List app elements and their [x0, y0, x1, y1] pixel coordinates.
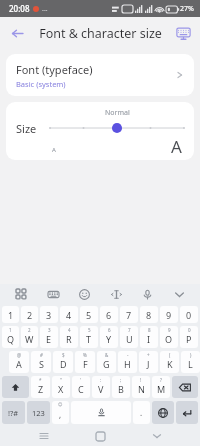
button[interactable]: Hide keyboard — [144, 426, 170, 446]
button[interactable]: 5 — [80, 306, 98, 323]
button[interactable]: ; — [112, 376, 130, 398]
button[interactable]: 9 — [160, 306, 178, 323]
button[interactable]: 8 — [140, 326, 158, 348]
staticText: 2 — [27, 309, 33, 321]
button[interactable]: 4 — [60, 326, 78, 348]
staticText: N — [138, 383, 145, 395]
button[interactable]: : — [92, 376, 110, 398]
button[interactable]: Clipboard — [12, 285, 30, 303]
button[interactable]: 2 — [21, 306, 38, 323]
staticText: L — [188, 358, 193, 370]
button[interactable]: 0 — [180, 326, 198, 348]
staticText: . — [140, 407, 143, 418]
staticText: Z — [38, 383, 44, 395]
staticText: D — [60, 358, 67, 370]
staticText: W — [25, 333, 34, 345]
button[interactable]: Voice input — [138, 285, 156, 303]
button[interactable]: 3 — [40, 326, 58, 348]
staticText: Q — [7, 333, 15, 345]
button[interactable]: @ — [9, 351, 29, 373]
button[interactable]: 7 — [120, 306, 138, 323]
staticText: # — [40, 352, 43, 358]
staticText: ; — [120, 377, 122, 383]
button[interactable]: ☺ — [52, 401, 69, 424]
staticText: ! — [140, 377, 142, 383]
button[interactable]: * — [31, 376, 50, 398]
staticText: ) — [190, 352, 192, 358]
staticText: 7 — [128, 327, 131, 333]
button[interactable]: Emoji — [75, 285, 93, 303]
button[interactable]: 3 — [40, 306, 58, 323]
button[interactable]: Recent apps — [31, 426, 57, 446]
staticText: & — [105, 352, 109, 358]
button[interactable]: % — [75, 351, 95, 373]
button[interactable]: Shift — [2, 376, 29, 398]
button[interactable]: Change language — [152, 401, 174, 424]
staticText: 20:08 — [9, 3, 30, 14]
button[interactable]: ( — [160, 351, 179, 373]
button[interactable]: Home — [87, 426, 113, 446]
button[interactable]: & — [97, 351, 116, 373]
button[interactable]: More — [170, 285, 188, 303]
staticText: ☺ — [58, 402, 63, 407]
button[interactable]: ) — [181, 351, 200, 373]
staticText: 0 — [188, 327, 191, 333]
staticText: Y — [106, 333, 112, 345]
staticText: 4 — [66, 309, 72, 321]
staticText: 1 — [8, 309, 14, 321]
staticText: 1 — [9, 327, 12, 333]
staticText: Normal — [105, 108, 130, 118]
staticText: I — [147, 333, 151, 345]
button[interactable]: " — [52, 376, 70, 398]
staticText: G — [103, 358, 110, 370]
staticText: 5 — [88, 327, 91, 333]
button[interactable]: Back — [4, 20, 30, 46]
staticText: A — [16, 358, 22, 370]
button[interactable]: 5 — [80, 326, 98, 348]
staticText: Font (typeface) — [16, 62, 93, 77]
staticText: 123 — [32, 408, 45, 418]
staticText: 8 — [146, 309, 152, 321]
staticText: 6 — [106, 309, 112, 321]
button[interactable]: + — [139, 351, 158, 373]
button[interactable]: Font (typeface) — [6, 54, 194, 96]
staticText: * — [39, 377, 42, 383]
button[interactable]: Keyboard preview — [171, 21, 195, 45]
staticText: K — [167, 358, 173, 370]
button[interactable]: !?# — [2, 401, 25, 424]
button[interactable]: . — [133, 401, 150, 424]
button[interactable]: Enter — [176, 401, 198, 424]
button[interactable]: 2 — [21, 326, 38, 348]
staticText: H — [124, 358, 131, 370]
staticText: T — [86, 333, 92, 345]
staticText: Basic (system) — [16, 79, 66, 89]
button[interactable]: - — [118, 351, 137, 373]
button[interactable]: 123 — [27, 401, 50, 424]
button[interactable]: 6 — [100, 326, 118, 348]
button[interactable]: Backspace — [172, 376, 198, 398]
button[interactable]: $ — [53, 351, 73, 373]
staticText: ' — [80, 377, 82, 383]
button[interactable]: 9 — [160, 326, 178, 348]
button[interactable]: ' — [72, 376, 90, 398]
button[interactable]: 6 — [100, 306, 118, 323]
button[interactable]: Font size slider — [50, 108, 184, 142]
staticText: S — [39, 358, 44, 370]
staticText: : — [100, 377, 102, 383]
button[interactable]: 0 — [180, 306, 198, 323]
button[interactable]: Cursor control — [107, 285, 125, 303]
button[interactable]: 7 — [120, 326, 138, 348]
staticText: ? — [160, 377, 162, 383]
button[interactable]: ? — [152, 376, 170, 398]
staticText: M — [157, 383, 166, 395]
button[interactable]: Keyboard layout — [44, 285, 62, 303]
staticText: 6 — [108, 327, 111, 333]
button[interactable]: 1 — [2, 306, 19, 323]
button[interactable]: # — [31, 351, 51, 373]
button[interactable]: ! — [132, 376, 150, 398]
button[interactable]: 1 — [2, 326, 19, 348]
button[interactable]: 8 — [140, 306, 158, 323]
staticText: R — [66, 333, 72, 345]
button[interactable]: 4 — [60, 306, 78, 323]
button[interactable]: Space — [71, 401, 131, 424]
